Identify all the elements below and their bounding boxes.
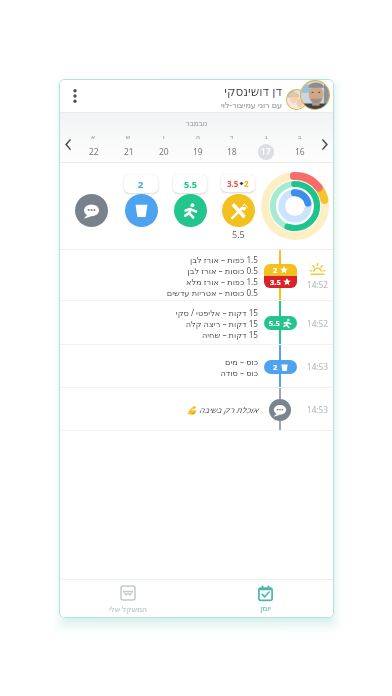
button[interactable]: כוס – מים bbox=[59, 345, 334, 388]
button[interactable]: יומן bbox=[196, 580, 334, 618]
button[interactable]: 1.5 כפות – אורז לבן bbox=[59, 250, 334, 301]
staticText: 5.5 bbox=[184, 178, 197, 190]
staticText: ה bbox=[196, 133, 200, 140]
staticText: 14:52 bbox=[307, 318, 328, 329]
button[interactable]: 15 דקות – אליפטי / סקי bbox=[59, 301, 334, 345]
button[interactable]: אוכלת רק בשיבה 💪 bbox=[59, 388, 334, 431]
button[interactable]: ה bbox=[181, 133, 215, 160]
staticText: ג bbox=[265, 133, 268, 140]
button[interactable]: ו bbox=[146, 133, 181, 160]
staticText: 14:52 bbox=[307, 279, 328, 290]
staticText: 5.5 bbox=[232, 228, 245, 240]
staticText: 5.5 bbox=[269, 318, 280, 328]
button[interactable]: Next week bbox=[317, 133, 333, 155]
staticText: 15 דקות – ריצה קלה bbox=[185, 318, 258, 329]
staticText: 2 bbox=[273, 265, 278, 275]
button[interactable]: More options bbox=[64, 85, 86, 107]
staticText: עם רוני עמיצור-לוי bbox=[221, 99, 282, 110]
button[interactable]: המשקל שלי bbox=[59, 580, 196, 618]
button[interactable]: ש bbox=[111, 133, 146, 160]
staticText: 14:53 bbox=[307, 404, 328, 415]
staticText: 16 bbox=[295, 146, 305, 158]
staticText: 1.5 כפות – אורז לבן bbox=[189, 254, 258, 265]
button[interactable]: cup bbox=[125, 194, 158, 227]
staticText: המשקל שלי bbox=[108, 604, 147, 614]
staticText: 14:53 bbox=[307, 361, 328, 372]
staticText: 2 bbox=[273, 362, 278, 372]
staticText: דן דושינסקי bbox=[224, 83, 282, 99]
staticText: 1.5 כפות – אורז מלא bbox=[185, 276, 258, 287]
staticText: 15 דקות – שחיה bbox=[201, 329, 258, 340]
staticText: 20 bbox=[159, 146, 169, 158]
staticText: 2 bbox=[138, 178, 144, 190]
staticText: א bbox=[91, 133, 96, 140]
staticText: 21 bbox=[124, 146, 134, 158]
staticText: כוס – סודה bbox=[220, 367, 258, 378]
staticText: ב bbox=[298, 133, 302, 140]
staticText: 17 bbox=[261, 146, 271, 158]
staticText: 2 bbox=[244, 178, 249, 189]
staticText: 3.5 bbox=[227, 178, 239, 189]
button[interactable]: Previous week bbox=[60, 133, 76, 155]
staticText: 0.5 כוסות – אטריות עדשים bbox=[166, 287, 258, 298]
button[interactable]: food bbox=[222, 194, 255, 227]
staticText: נובמבר bbox=[59, 120, 334, 128]
button[interactable]: ג bbox=[249, 133, 283, 160]
button[interactable]: chat bbox=[75, 194, 108, 227]
staticText: כוס – מים bbox=[224, 356, 258, 367]
staticText: ש bbox=[126, 133, 131, 140]
staticText: ד bbox=[230, 133, 234, 140]
staticText: אוכלת רק בשיבה 💪 bbox=[186, 404, 258, 415]
staticText: ו bbox=[163, 133, 165, 140]
staticText: יומן bbox=[260, 604, 271, 613]
staticText: 15 דקות – אליפטי / סקי bbox=[175, 307, 258, 318]
staticText: 22 bbox=[89, 146, 99, 158]
button[interactable]: ד bbox=[215, 133, 249, 160]
staticText: 3.5 bbox=[270, 277, 281, 287]
button[interactable]: א bbox=[76, 133, 111, 160]
button[interactable]: ב bbox=[283, 133, 317, 160]
staticText: 19 bbox=[193, 146, 203, 158]
staticText: 18 bbox=[227, 146, 237, 158]
button[interactable]: run bbox=[174, 194, 207, 227]
staticText: 0.5 כוסות – אורז לבן bbox=[187, 265, 258, 276]
